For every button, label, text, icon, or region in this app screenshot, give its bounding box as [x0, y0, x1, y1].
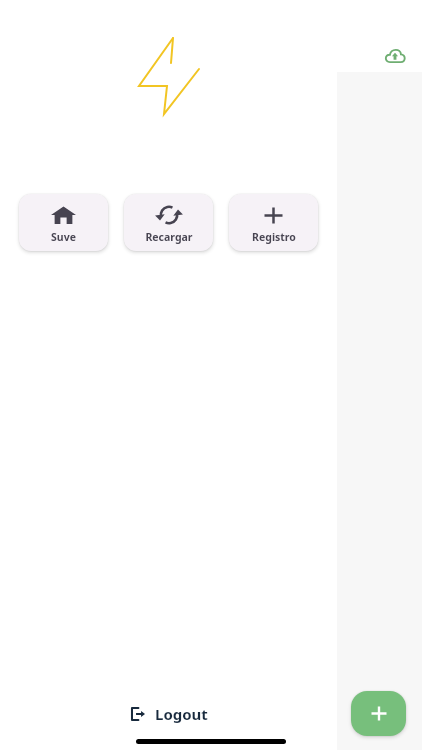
button[interactable]: Logout: [123, 698, 216, 730]
button[interactable]: Upload: [381, 43, 409, 69]
staticText: Suve: [51, 230, 76, 244]
button[interactable]: Registro: [229, 194, 318, 251]
staticText: Registro: [252, 230, 296, 244]
button[interactable]: Add: [351, 691, 406, 736]
button[interactable]: Suve: [19, 194, 108, 251]
staticText: Logout: [155, 704, 208, 724]
staticText: Recargar: [145, 230, 193, 244]
button[interactable]: Recargar: [124, 194, 213, 251]
